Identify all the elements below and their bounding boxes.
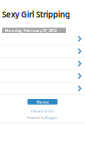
button[interactable] (0, 70, 85, 83)
staticText: Monday, February 27, 2012 (4, 28, 56, 33)
button[interactable] (0, 33, 85, 45)
staticText: Powered by (27, 116, 44, 120)
staticText: Sexy Girl Stripping (2, 9, 70, 20)
button[interactable]: Blogger. (45, 116, 58, 120)
staticText: Blogger. (45, 116, 58, 120)
staticText: View web version (30, 110, 54, 113)
staticText: Home (36, 99, 48, 104)
button[interactable]: View web version (30, 110, 54, 113)
button[interactable] (0, 45, 85, 58)
button[interactable]: Home (27, 99, 57, 105)
button[interactable] (0, 58, 85, 70)
button[interactable] (0, 83, 85, 95)
